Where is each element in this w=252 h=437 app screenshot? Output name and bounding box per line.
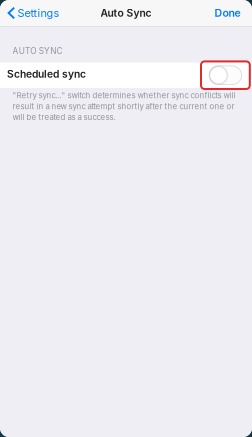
- staticText: Settings: [17, 6, 59, 20]
- button[interactable]: Settings: [0, 0, 67, 26]
- staticText: "Retry sync..." switch determines whethe…: [12, 91, 235, 122]
- button[interactable]: Scheduled sync: [201, 61, 250, 89]
- button[interactable]: Done: [204, 0, 252, 26]
- button[interactable]: Scheduled sync: [0, 62, 252, 88]
- staticText: Scheduled sync: [7, 68, 86, 80]
- staticText: AUTO SYNC: [12, 46, 62, 56]
- staticText: Auto Sync: [100, 7, 151, 19]
- staticText: Done: [214, 7, 240, 19]
